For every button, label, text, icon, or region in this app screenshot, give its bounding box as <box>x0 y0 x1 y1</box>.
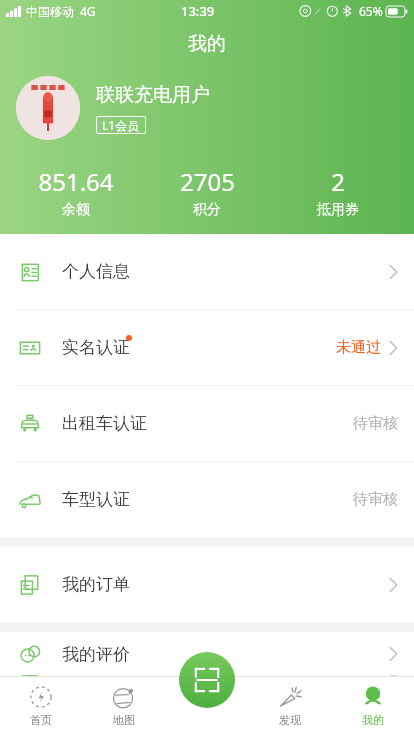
button[interactable]: L1会员 <box>102 117 140 133</box>
button[interactable]: 头像 <box>16 76 80 140</box>
staticText: 个人信息 <box>62 261 130 282</box>
staticText: 851.64 <box>38 165 114 198</box>
button[interactable]: 851.64 <box>21 165 131 219</box>
staticText: 65% <box>359 3 383 19</box>
staticText: 积分 <box>193 201 221 219</box>
button[interactable]: 出租车认证 <box>0 386 414 461</box>
staticText: 未通过 <box>336 338 381 357</box>
staticText: 首页 <box>30 713 52 727</box>
staticText: 车型认证 <box>62 489 130 510</box>
staticText: 13:39 <box>181 2 215 20</box>
staticText: 发现 <box>279 713 301 727</box>
staticText: 我的 <box>362 713 384 727</box>
button[interactable]: 我的 <box>331 676 414 736</box>
button[interactable]: 车型认证 <box>0 462 414 537</box>
button[interactable]: 实名认证 <box>0 310 414 385</box>
button[interactable]: 我的订单 <box>0 547 414 622</box>
staticText: 出租车认证 <box>62 413 147 434</box>
staticText: 余额 <box>62 201 90 219</box>
staticText: 中国移动 <box>26 4 74 19</box>
button[interactable]: 地图 <box>82 676 165 736</box>
staticText: L1会员 <box>102 117 140 133</box>
staticText: 联联充电用户 <box>96 83 210 107</box>
button[interactable]: 我的评价 <box>0 632 414 676</box>
button[interactable]: 首页 <box>0 676 82 736</box>
button[interactable]: 2705 <box>152 165 262 219</box>
staticText: 地图 <box>113 713 135 727</box>
button[interactable]: 发现 <box>248 676 331 736</box>
button[interactable]: 2 <box>283 165 393 219</box>
button[interactable]: 个人信息 <box>0 234 414 309</box>
staticText: 待审核 <box>353 414 398 433</box>
staticText: 我的订单 <box>62 574 130 595</box>
staticText: 我的 <box>188 32 226 56</box>
staticText: 实名认证 <box>62 337 130 358</box>
staticText: 我的评价 <box>62 644 130 665</box>
staticText: 4G <box>80 3 96 19</box>
staticText: 2 <box>331 165 345 198</box>
staticText: 抵用券 <box>317 201 359 219</box>
button[interactable]: 扫一扫 <box>179 652 235 708</box>
staticText: 待审核 <box>353 490 398 509</box>
staticText: 2705 <box>180 165 235 198</box>
